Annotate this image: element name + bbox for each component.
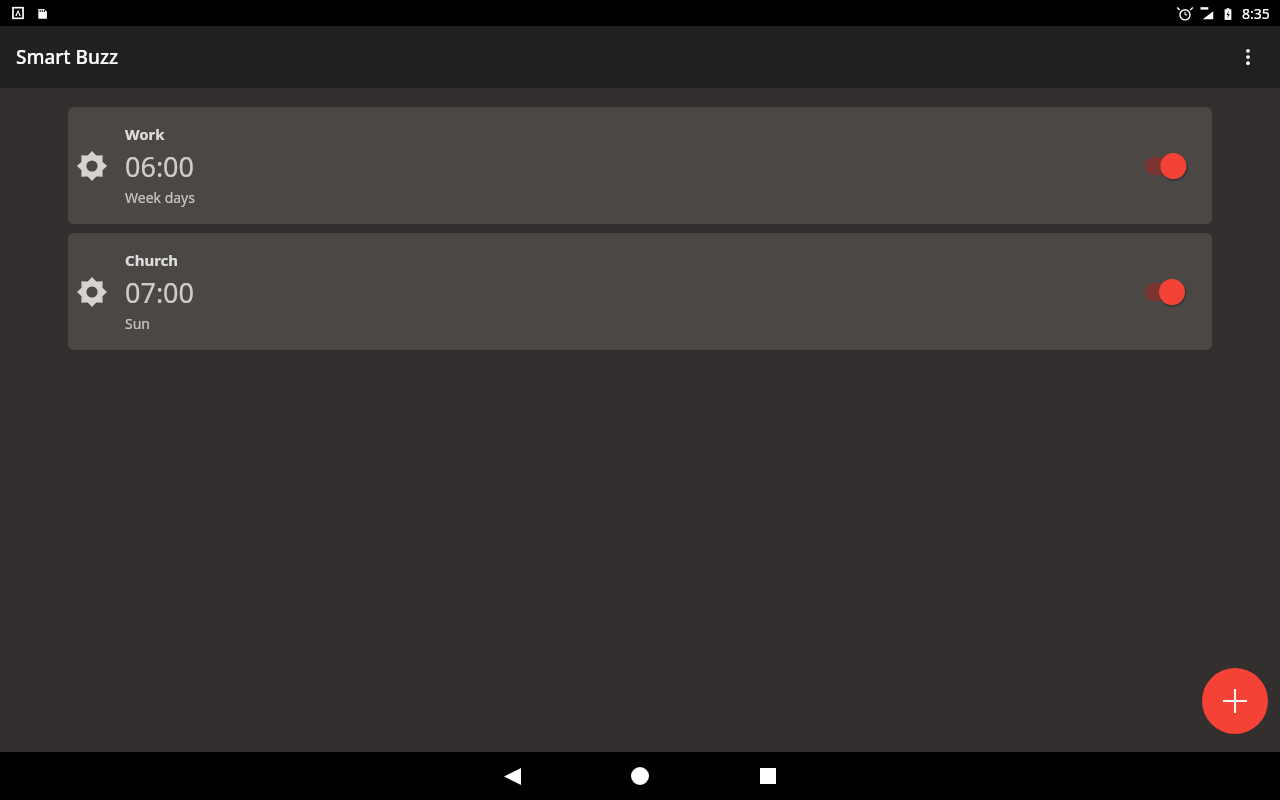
button[interactable]: Add alarm [1202,668,1268,734]
button[interactable]: Back [482,752,542,800]
staticText: Work [125,124,165,144]
button[interactable]: Toggle alarm Work [1142,148,1196,184]
button[interactable]: Toggle alarm Church [1142,274,1196,310]
staticText: Church [125,250,179,270]
staticText: 07:00 [125,274,195,311]
button[interactable]: Work [68,107,1212,224]
staticText: 06:00 [125,148,195,185]
button[interactable]: Church [68,233,1212,350]
staticText: Week days [125,188,195,207]
button[interactable]: Home [610,752,670,800]
button[interactable]: More options [1226,35,1270,79]
staticText: Smart Buzz [16,44,119,70]
staticText: Sun [125,314,150,333]
staticText: 8:35 [1242,4,1270,23]
button[interactable]: Recent apps [738,752,798,800]
